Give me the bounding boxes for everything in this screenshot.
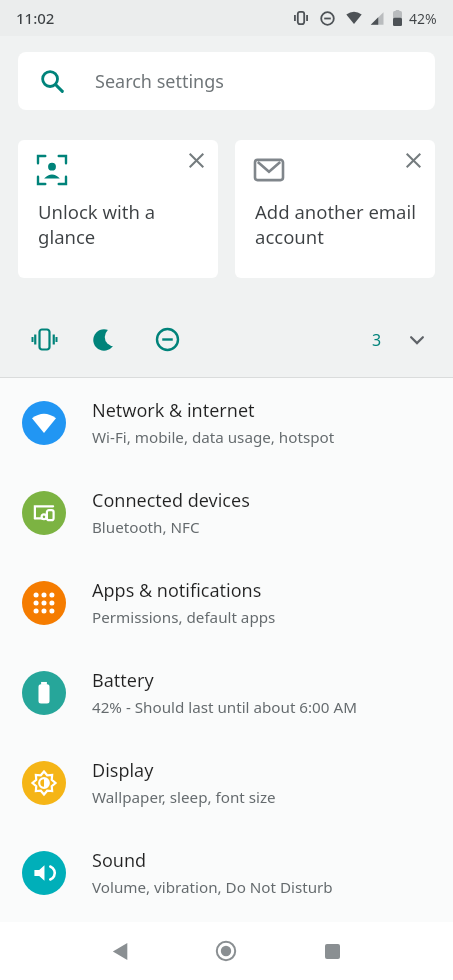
button[interactable]	[202, 927, 250, 975]
button[interactable]	[308, 927, 356, 975]
staticText: Volume, vibration, Do Not Disturb	[92, 877, 333, 898]
staticText: 3	[372, 329, 382, 351]
staticText: Apps & notifications	[92, 578, 262, 603]
button[interactable]	[96, 927, 144, 975]
staticText: Sound	[92, 848, 147, 873]
staticText: 42% - Should last until about 6:00 AM	[92, 697, 357, 718]
button[interactable]: Sound	[0, 828, 453, 917]
staticText: Wallpaper, sleep, font size	[92, 787, 276, 808]
button[interactable]: Search settings	[18, 52, 435, 110]
staticText: Permissions, default apps	[92, 607, 276, 628]
button[interactable]: Display	[0, 738, 453, 828]
button[interactable]: Connected devices	[0, 468, 453, 558]
staticText: Connected devices	[92, 488, 250, 513]
staticText: Unlock with a glance	[38, 199, 204, 250]
button[interactable]: Battery	[0, 648, 453, 738]
staticText: Display	[92, 758, 154, 783]
button[interactable]: Apps & notifications	[0, 558, 453, 648]
button[interactable]: 3	[0, 302, 453, 377]
button[interactable]: Network & internet	[0, 378, 453, 468]
button[interactable]: Add another email account	[235, 140, 435, 278]
button[interactable]	[186, 150, 206, 170]
staticText: 11:02	[16, 8, 55, 28]
button[interactable]: Unlock with a glance	[18, 140, 218, 278]
staticText: Bluetooth, NFC	[92, 517, 200, 538]
button[interactable]	[403, 150, 423, 170]
staticText: Wi-Fi, mobile, data usage, hotspot	[92, 427, 335, 448]
staticText: Network & internet	[92, 398, 255, 423]
staticText: Battery	[92, 668, 154, 693]
staticText: Search settings	[95, 69, 224, 94]
staticText: 42%	[409, 9, 437, 28]
staticText: Add another email account	[255, 199, 421, 250]
